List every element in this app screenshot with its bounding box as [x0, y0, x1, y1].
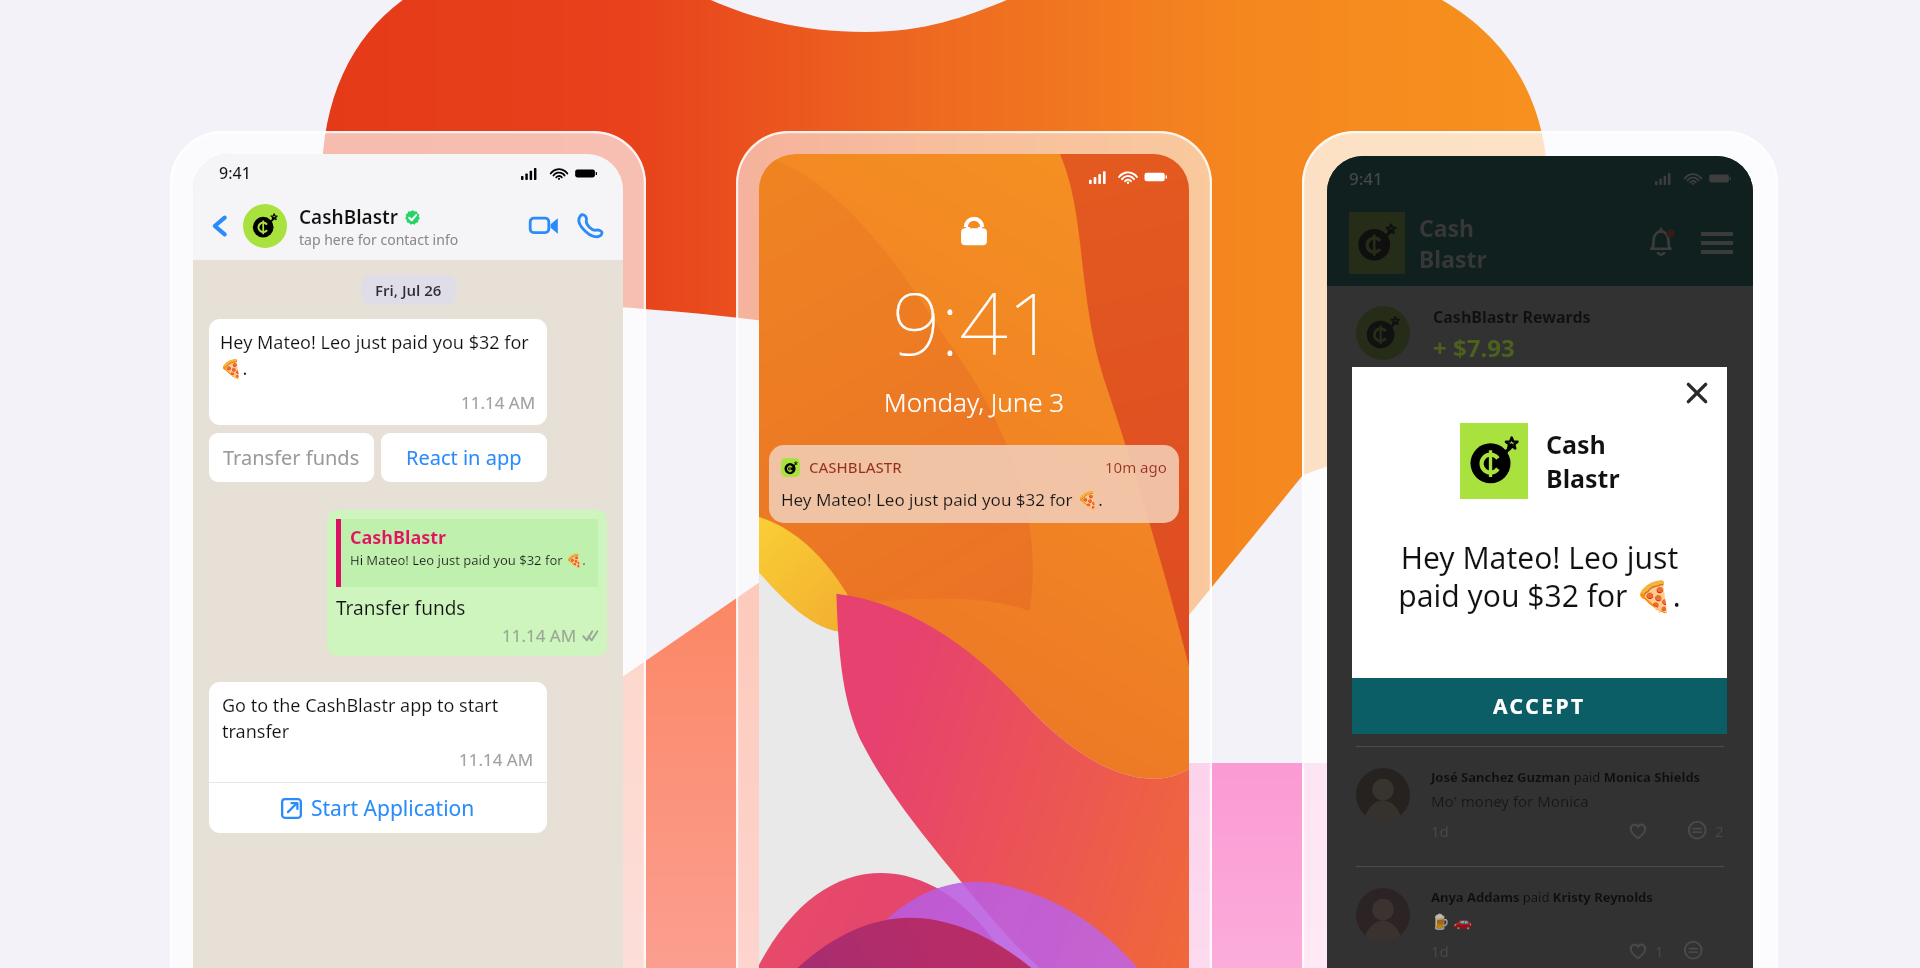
- staticText: José Sanchez Guzman paid Monica Shields: [1431, 768, 1701, 786]
- staticText: Fri, Jul 26: [375, 280, 442, 300]
- button[interactable]: José Sanchez Guzman paid Monica Shields: [1356, 721, 1724, 841]
- button[interactable]: CashBlastr: [327, 510, 607, 656]
- staticText: + $7.93: [1433, 331, 1515, 364]
- button[interactable]: React in app: [381, 433, 547, 482]
- staticText: Transfer funds: [223, 444, 360, 471]
- button[interactable]: Menu: [1701, 231, 1733, 255]
- button[interactable]: Start Application: [209, 783, 547, 833]
- staticText: 🍺 🚗: [1431, 911, 1473, 931]
- staticText: 10m ago: [1105, 457, 1167, 477]
- staticText: Hi Mateo! Leo just paid you $32 for 🍕.: [350, 551, 586, 569]
- staticText: Hey Mateo! Leo just paid you $32 for 🍕.: [1378, 537, 1701, 616]
- button[interactable]: CASHBLASTR: [769, 445, 1179, 523]
- button[interactable]: Hey Mateo! Leo just paid you $32 for 🍕.: [209, 319, 547, 425]
- button[interactable]: Notifications: [1645, 227, 1677, 259]
- staticText: 11.14 AM: [461, 391, 536, 414]
- button[interactable]: ACCEPT: [1352, 678, 1727, 734]
- staticText: tap here for contact info: [299, 230, 459, 249]
- staticText: 9:41: [219, 162, 251, 184]
- staticText: ACCEPT: [1493, 692, 1586, 721]
- staticText: 2: [1715, 821, 1724, 841]
- staticText: CashBlastr: [299, 204, 399, 230]
- staticText: Go to the CashBlastr app to start transf…: [222, 693, 534, 743]
- staticText: Blastr: [1546, 461, 1620, 495]
- staticText: Cash: [1546, 427, 1606, 461]
- staticText: Transfer funds: [336, 595, 466, 621]
- staticText: 11.14 AM: [502, 624, 577, 647]
- staticText: CashBlastr Rewards: [1433, 306, 1591, 328]
- staticText: Cash: [1419, 212, 1475, 243]
- staticText: Anya Addams paid Kristy Reynolds: [1431, 888, 1653, 906]
- other: Locked: [957, 214, 991, 248]
- staticText: Start Application: [311, 794, 475, 823]
- staticText: 9:41: [892, 264, 1057, 380]
- staticText: CashBlastr: [350, 525, 447, 550]
- staticText: 1d: [1431, 941, 1449, 961]
- staticText: Hey Mateo! Leo just paid you $32 for 🍕.: [220, 330, 536, 380]
- staticText: 11.14 AM: [459, 748, 534, 771]
- button[interactable]: CashBlastr Rewards: [1356, 306, 1724, 364]
- staticText: Mo' money for Monica: [1431, 791, 1589, 811]
- staticText: Blastr: [1419, 243, 1487, 274]
- button[interactable]: Video call: [529, 211, 559, 241]
- button[interactable]: Anya Addams paid Kristy Reynolds: [1356, 841, 1724, 961]
- staticText: 9:41: [1349, 167, 1383, 190]
- staticText: CASHBLASTR: [809, 457, 902, 477]
- staticText: 1: [1655, 941, 1664, 961]
- button[interactable]: Transfer funds: [209, 433, 374, 482]
- button[interactable]: Close: [1685, 381, 1709, 405]
- staticText: 1d: [1431, 821, 1449, 841]
- button[interactable]: Back: [193, 192, 623, 260]
- staticText: Hey Mateo! Leo just paid you $32 for 🍕.: [781, 488, 1103, 511]
- button[interactable]: Voice call: [575, 211, 605, 241]
- staticText: React in app: [406, 444, 522, 471]
- button[interactable]: Back: [207, 213, 233, 239]
- staticText: Monday, June 3: [884, 384, 1065, 419]
